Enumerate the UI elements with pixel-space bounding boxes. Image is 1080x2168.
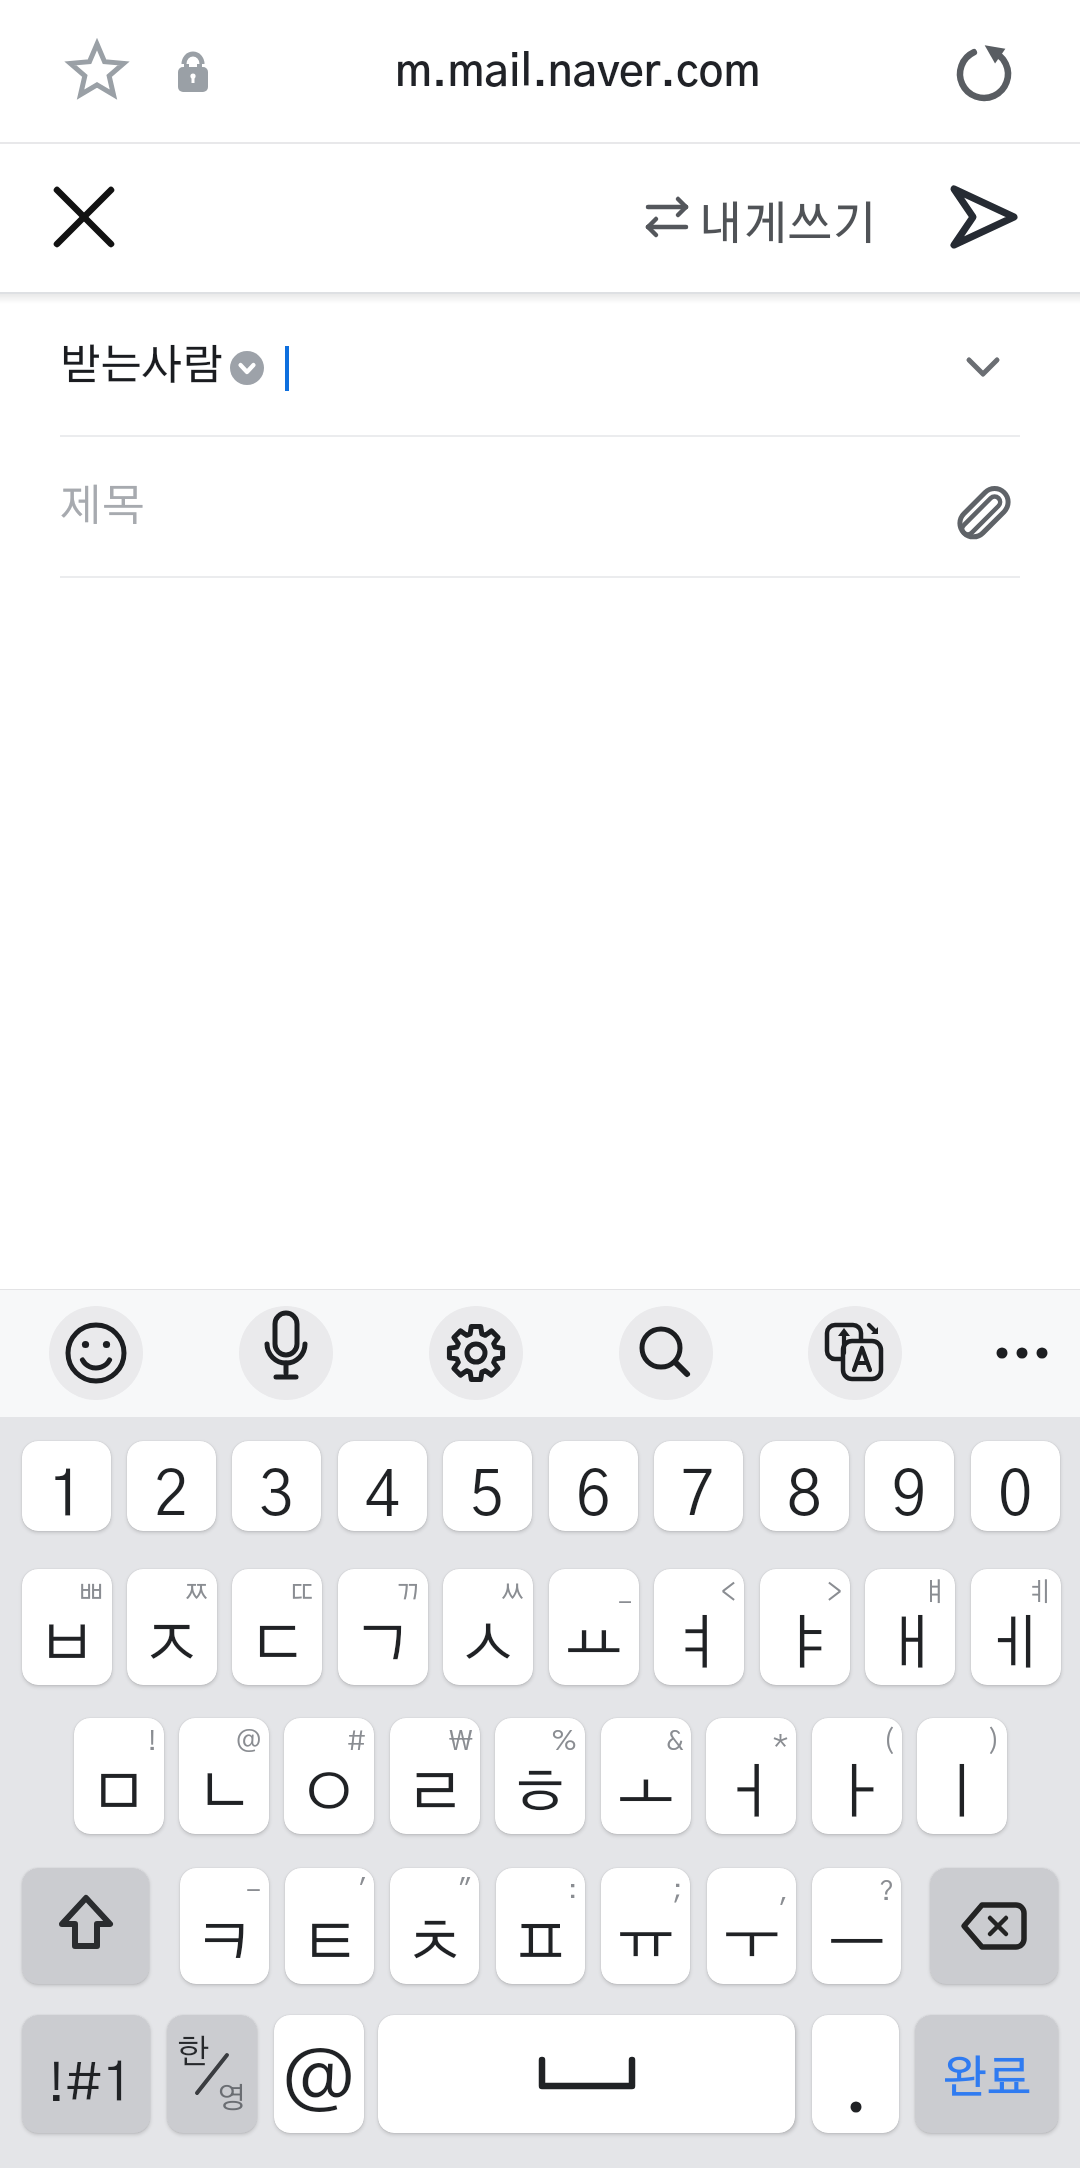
staticText: ㄷ — [247, 1615, 307, 1675]
staticText: " — [458, 1878, 472, 1905]
button[interactable]: ㅈ — [127, 1569, 217, 1685]
button[interactable] — [948, 185, 1020, 249]
button[interactable]: ㅜ — [707, 1868, 796, 1984]
button[interactable] — [808, 1306, 902, 1400]
staticText: ㅅ — [458, 1615, 518, 1675]
button[interactable]: ㅛ — [549, 1569, 639, 1685]
button[interactable]: 2 — [127, 1441, 216, 1531]
staticText: 받는사람 — [60, 345, 224, 387]
button[interactable] — [67, 42, 127, 102]
staticText: ㅐ — [880, 1615, 940, 1675]
button[interactable]: 6 — [549, 1441, 638, 1531]
button[interactable]: 5 — [443, 1441, 532, 1531]
button[interactable]: ㅎ — [495, 1718, 585, 1834]
staticText: ㅋ — [195, 1914, 255, 1974]
button[interactable]: ㅡ — [812, 1868, 901, 1984]
staticText: ㄲ — [394, 1579, 421, 1606]
staticText: ㅜ — [722, 1914, 782, 1974]
staticText: ㅣ — [932, 1764, 992, 1824]
button[interactable] — [952, 478, 1016, 546]
button[interactable]: 0 — [971, 1441, 1060, 1531]
staticText: 0 — [998, 1466, 1033, 1528]
button[interactable]: ㅁ — [74, 1718, 164, 1834]
staticText: 내게쓰기 — [698, 202, 877, 248]
button[interactable]: ㅑ — [760, 1569, 850, 1685]
button[interactable]: 8 — [760, 1441, 849, 1531]
staticText: ㄴ — [194, 1764, 254, 1824]
button[interactable] — [239, 1306, 333, 1400]
staticText: ㅖ — [1027, 1579, 1054, 1606]
button[interactable]: 제목 — [0, 437, 1080, 577]
button[interactable] — [930, 1868, 1058, 1984]
staticText: 한 — [177, 2036, 210, 2070]
button[interactable] — [378, 2015, 795, 2133]
button[interactable]: ㅐ — [865, 1569, 955, 1685]
staticText: ㅂ — [37, 1615, 97, 1675]
button[interactable]: 4 — [338, 1441, 427, 1531]
staticText: > — [827, 1579, 843, 1606]
button[interactable]: ㅗ — [601, 1718, 691, 1834]
button[interactable]: ㅍ — [496, 1868, 585, 1984]
button[interactable]: 내게쓰기 — [630, 180, 880, 254]
button[interactable]: ㅂ — [22, 1569, 112, 1685]
button[interactable] — [56, 189, 112, 245]
staticText: ㅍ — [511, 1914, 571, 1974]
button[interactable]: ㅣ — [917, 1718, 1007, 1834]
button[interactable]: ㄴ — [179, 1718, 269, 1834]
staticText: ㅕ — [669, 1615, 729, 1675]
button[interactable]: !#1 — [22, 2015, 150, 2133]
button[interactable] — [49, 1306, 143, 1400]
button[interactable]: ㄹ — [390, 1718, 480, 1834]
staticText: ₩ — [449, 1728, 473, 1755]
staticText: 2 — [154, 1466, 189, 1528]
button[interactable]: ㅓ — [706, 1718, 796, 1834]
staticText: , — [779, 1878, 789, 1905]
staticText: ㄹ — [405, 1764, 465, 1824]
button[interactable]: ㅊ — [390, 1868, 479, 1984]
staticText: 8 — [787, 1466, 822, 1528]
staticText: ㅡ — [827, 1914, 887, 1974]
button[interactable]: ㅋ — [180, 1868, 269, 1984]
button[interactable] — [22, 1868, 149, 1984]
button[interactable]: 7 — [654, 1441, 743, 1531]
staticText: ; — [673, 1878, 683, 1905]
staticText: 제목 — [60, 485, 145, 529]
button[interactable]: 1 — [22, 1441, 111, 1531]
button[interactable]: 완료 — [915, 2015, 1058, 2133]
button[interactable]: 9 — [865, 1441, 954, 1531]
staticText: 5 — [470, 1466, 505, 1528]
staticText: _ — [619, 1579, 632, 1606]
button[interactable] — [954, 42, 1014, 102]
staticText: ㅁ — [89, 1764, 149, 1824]
button[interactable] — [982, 1313, 1062, 1393]
staticText: - — [246, 1878, 262, 1905]
staticText: ' — [358, 1878, 367, 1905]
button[interactable] — [619, 1306, 713, 1400]
button[interactable]: ㄷ — [232, 1569, 322, 1685]
button[interactable]: ㅏ — [812, 1718, 902, 1834]
staticText: ㅓ — [721, 1764, 781, 1824]
staticText: # — [347, 1728, 367, 1755]
button[interactable]: ㅌ — [285, 1868, 374, 1984]
button[interactable]: 3 — [232, 1441, 321, 1531]
button[interactable]: ㅅ — [443, 1569, 533, 1685]
button[interactable]: ㅔ — [971, 1569, 1061, 1685]
staticText: ㅈ — [142, 1615, 202, 1675]
button[interactable]: ㅇ — [284, 1718, 374, 1834]
button[interactable]: ㅕ — [654, 1569, 744, 1685]
button[interactable]: 받는사람 — [0, 296, 1080, 436]
staticText: : — [568, 1878, 578, 1905]
button[interactable] — [429, 1306, 523, 1400]
button[interactable]: @ — [274, 2015, 364, 2133]
staticText: < — [721, 1579, 737, 1606]
staticText: ㅎ — [510, 1764, 570, 1824]
button[interactable]: ㄱ — [338, 1569, 428, 1685]
staticText: @ — [282, 2045, 356, 2123]
button[interactable]: ㅠ — [601, 1868, 690, 1984]
staticText: ㅆ — [499, 1579, 526, 1606]
staticText: ㄸ — [288, 1579, 315, 1606]
button[interactable] — [812, 2015, 899, 2133]
button[interactable] — [961, 344, 1005, 388]
button[interactable]: 한 — [167, 2015, 257, 2133]
staticText: 7 — [681, 1466, 716, 1528]
